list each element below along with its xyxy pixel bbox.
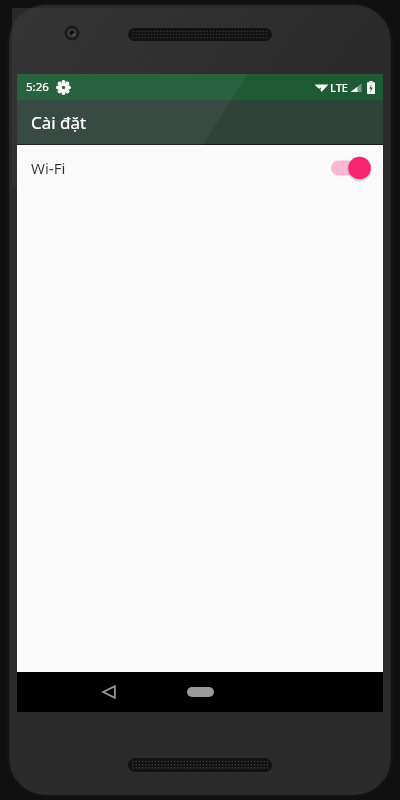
staticText: Wi-Fi <box>31 158 66 178</box>
button[interactable]: Back <box>87 672 131 712</box>
staticText: LTE <box>330 80 348 95</box>
button[interactable]: Wi-Fi <box>17 145 383 190</box>
staticText: 5:26 <box>26 79 49 95</box>
button[interactable]: Home <box>174 672 226 712</box>
button[interactable]: Wi-Fi toggle <box>330 154 370 182</box>
staticText: Cài đặt <box>31 111 87 134</box>
